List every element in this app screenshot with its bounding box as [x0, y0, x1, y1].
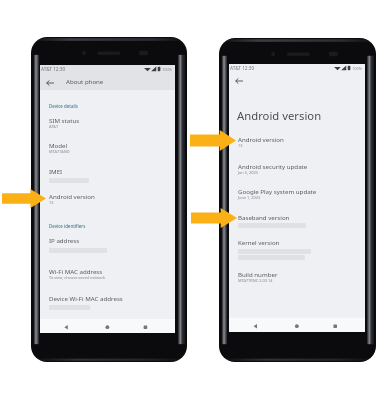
staticText: AT&T 12:30 [230, 65, 255, 71]
button[interactable]: Android security update [229, 162, 365, 175]
button[interactable]: Wi-Fi MAC address [40, 267, 175, 280]
staticText: Baseband version [238, 213, 290, 221]
staticText: Device Wi-Fi MAC address [49, 294, 123, 302]
staticText: Build number [238, 270, 278, 278]
staticText: Device identifiers [49, 223, 86, 229]
button[interactable]: Model [40, 141, 175, 154]
staticText: About phone [66, 77, 104, 85]
staticText: 13 [49, 200, 54, 205]
staticText: IP address [49, 236, 80, 244]
button[interactable]: IMEI [40, 167, 175, 183]
button[interactable]: Android version [40, 192, 175, 205]
staticText: SIM status [49, 116, 80, 124]
staticText: IMEI [49, 167, 63, 175]
staticText: Wi-Fi MAC address [49, 267, 103, 275]
button[interactable]: Android version [229, 135, 365, 148]
button[interactable]: Baseband version [229, 213, 365, 228]
staticText: 13 [238, 143, 243, 148]
staticText: Model [49, 141, 68, 149]
staticText: Google Play system update [238, 187, 317, 195]
staticText: MTA77AND [49, 149, 70, 154]
staticText: 100% [352, 66, 363, 71]
staticText: MTA77RNC.2.03.14 [238, 278, 273, 283]
button[interactable]: SIM status [40, 116, 175, 129]
button[interactable]: Device Wi-Fi MAC address [40, 294, 175, 310]
staticText: 100% [162, 67, 173, 72]
staticText: Android version [238, 135, 284, 143]
staticText: Android version [237, 108, 322, 123]
staticText: Android version [49, 192, 95, 200]
staticText: Android security update [238, 162, 308, 170]
staticText: June 1, 2023 [238, 195, 261, 200]
staticText: Kernel version [238, 238, 280, 246]
staticText: AT&T 12:30 [41, 66, 66, 72]
button[interactable]: Build number [229, 270, 365, 283]
staticText: AT&T [49, 124, 59, 129]
button[interactable]: IP address [40, 236, 175, 253]
staticText: Jan 5, 2023 [238, 170, 258, 175]
staticText: To view, choose saved network [49, 275, 106, 280]
button[interactable]: Kernel version [229, 238, 365, 260]
staticText: Device details [49, 103, 78, 109]
button[interactable]: Back [232, 74, 245, 87]
button[interactable]: Back [43, 76, 56, 89]
button[interactable]: Google Play system update [229, 187, 365, 200]
